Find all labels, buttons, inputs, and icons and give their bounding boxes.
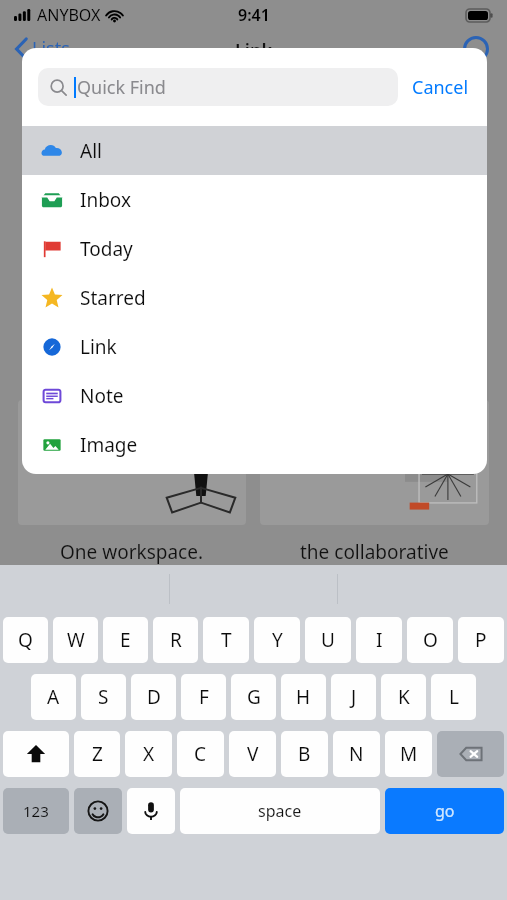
button[interactable]: I — [356, 617, 402, 663]
button[interactable]: Cancel — [398, 69, 471, 106]
button[interactable]: R — [153, 617, 198, 663]
button[interactable]: X — [125, 731, 172, 777]
staticText: Notes, tasks, wikis, & databases. — [28, 429, 157, 441]
staticText: Today — [80, 236, 133, 262]
staticText: ANYBOX — [37, 4, 101, 26]
button[interactable]: Note — [22, 371, 487, 420]
staticText: S — [98, 684, 109, 710]
button[interactable]: T — [203, 617, 249, 663]
staticText: V — [247, 741, 259, 767]
staticText: Lists — [32, 36, 70, 61]
button[interactable]: go — [385, 788, 504, 834]
staticText: Note — [80, 383, 124, 409]
button[interactable]: N — [333, 731, 380, 777]
staticText: B — [298, 741, 311, 767]
staticText: 123 — [23, 801, 49, 821]
button[interactable]: 123 — [3, 788, 69, 834]
button[interactable]: B — [281, 731, 328, 777]
button[interactable]: Today — [22, 224, 487, 273]
staticText: C — [194, 741, 207, 767]
button[interactable]: M — [385, 731, 432, 777]
staticText: M — [400, 741, 418, 767]
staticText: J — [351, 684, 357, 710]
button[interactable]: J — [331, 674, 376, 720]
button[interactable]: Z — [74, 731, 120, 777]
button[interactable]: H — [281, 674, 326, 720]
button[interactable]: Inbox — [22, 175, 487, 224]
button[interactable]: E — [103, 617, 148, 663]
button[interactable]: All — [22, 126, 487, 175]
staticText: Starred — [80, 285, 146, 311]
staticText: All — [80, 138, 102, 164]
staticText: G — [247, 684, 261, 710]
button[interactable]: W — [53, 617, 98, 663]
staticText: L — [449, 684, 459, 710]
staticText: Quick Find — [77, 75, 166, 100]
button[interactable]: Image — [22, 420, 487, 469]
staticText: Q — [18, 627, 33, 653]
staticText: Link — [235, 38, 272, 63]
button[interactable]: Backspace — [437, 731, 504, 777]
button[interactable]: V — [229, 731, 276, 777]
button[interactable]: Dictate — [127, 788, 175, 834]
button[interactable]: C — [177, 731, 224, 777]
staticText: U — [321, 627, 335, 653]
button[interactable]: P — [458, 617, 504, 663]
button[interactable]: F — [181, 674, 226, 720]
button[interactable]: Y — [254, 617, 300, 663]
staticText: Image — [80, 432, 138, 458]
button[interactable]: Link — [22, 322, 487, 371]
staticText: R — [170, 627, 182, 653]
button[interactable]: Q — [3, 617, 48, 663]
button[interactable]: space — [180, 788, 380, 834]
button[interactable]: U — [305, 617, 351, 663]
staticText: go — [435, 800, 455, 822]
staticText: Inbox — [80, 187, 132, 213]
button[interactable]: O — [407, 617, 453, 663]
staticText: Cancel — [412, 75, 469, 100]
staticText: the collaborative — [300, 539, 449, 565]
staticText: O — [423, 627, 438, 653]
staticText: D — [147, 684, 161, 710]
staticText: A — [47, 684, 60, 710]
button[interactable]: L — [431, 674, 476, 720]
staticText: Link — [80, 334, 117, 360]
button[interactable]: S — [81, 674, 126, 720]
button[interactable]: Shift — [3, 731, 69, 777]
staticText: F — [199, 684, 209, 710]
staticText: N — [349, 741, 364, 767]
button[interactable]: G — [231, 674, 276, 720]
button[interactable]: Starred — [22, 273, 487, 322]
button[interactable]: Emoji — [74, 788, 122, 834]
staticText: K — [398, 684, 410, 710]
staticText: T — [221, 627, 232, 653]
staticText: Z — [92, 741, 103, 767]
staticText: H — [296, 684, 311, 710]
staticText: W — [67, 627, 85, 653]
button[interactable]: D — [131, 674, 176, 720]
staticText: E — [120, 627, 131, 653]
staticText: X — [143, 741, 155, 767]
button[interactable]: Quick Find — [38, 68, 398, 106]
button[interactable]: A — [31, 674, 76, 720]
staticText: One workspace. — [60, 539, 204, 565]
staticText: P — [475, 627, 487, 653]
staticText: space — [258, 800, 302, 822]
staticText: I — [376, 627, 383, 653]
staticText: 9:41 — [238, 4, 270, 26]
staticText: Y — [272, 627, 283, 653]
button[interactable]: K — [381, 674, 426, 720]
